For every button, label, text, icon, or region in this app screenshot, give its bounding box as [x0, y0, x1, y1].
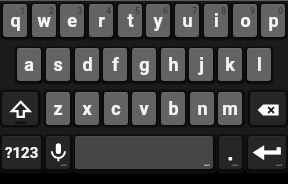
staticText: 5: [135, 6, 141, 17]
staticText: d: [82, 54, 93, 75]
staticText: l: [257, 54, 262, 75]
button[interactable]: a: [17, 48, 41, 81]
button[interactable]: 3: [60, 4, 84, 37]
staticText: x: [82, 98, 92, 119]
button[interactable]: h: [161, 48, 185, 81]
staticText: u: [182, 10, 193, 31]
staticText: a: [24, 54, 34, 75]
button[interactable]: k: [218, 48, 242, 81]
button[interactable]: n: [190, 92, 214, 125]
staticText: 0: [278, 6, 284, 17]
button[interactable]: d: [75, 48, 99, 81]
staticText: h: [168, 54, 179, 75]
staticText: f: [112, 54, 119, 75]
button[interactable]: l: [247, 48, 271, 81]
button[interactable]: v: [132, 92, 156, 125]
staticText: o: [240, 10, 251, 31]
button[interactable]: 0: [261, 4, 285, 37]
button[interactable]: [219, 136, 242, 169]
staticText: 8: [221, 6, 227, 17]
staticText: w: [37, 10, 51, 31]
button[interactable]: f: [103, 48, 127, 81]
staticText: 2: [49, 6, 55, 17]
button[interactable]: Enter: [248, 136, 286, 169]
button[interactable]: m: [218, 92, 242, 125]
button[interactable]: g: [132, 48, 156, 81]
staticText: t: [127, 10, 134, 31]
button[interactable]: Backspace: [250, 92, 286, 125]
staticText: p: [268, 10, 279, 31]
staticText: 7: [192, 6, 198, 17]
staticText: v: [139, 98, 149, 119]
button[interactable]: j: [189, 48, 213, 81]
button[interactable]: 2: [32, 4, 56, 37]
staticText: j: [199, 54, 204, 75]
button[interactable]: ?123: [2, 136, 41, 169]
button[interactable]: Space: [75, 136, 213, 169]
button[interactable]: 7: [175, 4, 199, 37]
staticText: n: [197, 98, 208, 119]
staticText: ?123: [5, 144, 39, 162]
staticText: c: [111, 98, 121, 119]
staticText: e: [67, 10, 77, 31]
button[interactable]: 6: [146, 4, 170, 37]
staticText: b: [168, 98, 179, 119]
staticText: i: [214, 10, 219, 31]
staticText: 4: [106, 6, 112, 17]
staticText: 6: [163, 6, 169, 17]
button[interactable]: 4: [89, 4, 113, 37]
staticText: m: [222, 98, 238, 119]
button[interactable]: 1: [3, 4, 27, 37]
staticText: y: [153, 10, 163, 31]
staticText: 1: [20, 6, 26, 17]
staticText: s: [53, 54, 63, 75]
staticText: 3: [77, 6, 83, 17]
button[interactable]: z: [46, 92, 70, 125]
button[interactable]: s: [46, 48, 70, 81]
button[interactable]: 5: [118, 4, 142, 37]
staticText: k: [225, 54, 235, 75]
button[interactable]: c: [104, 92, 128, 125]
button[interactable]: x: [75, 92, 99, 125]
button[interactable]: Voice input: [46, 136, 70, 169]
button[interactable]: b: [161, 92, 185, 125]
button[interactable]: 8: [204, 4, 228, 37]
staticText: q: [10, 10, 21, 31]
button[interactable]: 9: [233, 4, 257, 37]
button[interactable]: Shift: [2, 92, 38, 125]
staticText: g: [139, 54, 150, 75]
staticText: 9: [250, 6, 256, 17]
staticText: z: [53, 98, 63, 119]
staticText: r: [98, 10, 105, 31]
